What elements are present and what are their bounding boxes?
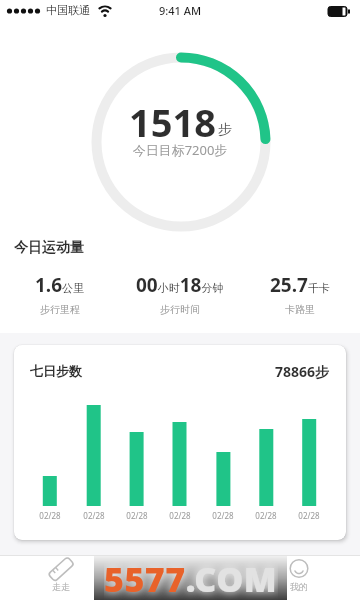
staticText: 02/28 [36, 510, 64, 521]
staticText: 25.7千卡 [270, 272, 330, 298]
staticText: 02/28 [166, 510, 194, 521]
staticText: 中国联通 [46, 3, 90, 17]
staticText: 9:41 AM [0, 3, 360, 18]
staticText: 02/28 [209, 510, 237, 521]
staticText: 02/28 [295, 510, 323, 521]
button[interactable]: 走走 [36, 559, 86, 600]
staticText: 1.6公里 [35, 272, 85, 298]
staticText: 步行里程 [40, 303, 80, 316]
staticText: 走走 [52, 581, 70, 592]
staticText: 02/28 [123, 510, 151, 521]
staticText: 02/28 [252, 510, 280, 521]
staticText: 5577.COM [104, 556, 278, 600]
staticText: 我的 [290, 581, 308, 592]
staticText: 00小时18分钟 [136, 272, 224, 298]
staticText: 卡路里 [285, 303, 315, 316]
staticText: 步 [218, 121, 232, 139]
staticText: 78866步 [14, 362, 329, 381]
staticText: 今日运动量 [14, 239, 84, 257]
staticText: 步行时间 [160, 303, 200, 316]
staticText: 今日目标7200步 [0, 141, 360, 159]
staticText: 七日步数 [30, 363, 82, 379]
staticText: 02/28 [80, 510, 108, 521]
button[interactable]: 我的 [274, 559, 324, 600]
staticText: 1518 [129, 96, 216, 148]
